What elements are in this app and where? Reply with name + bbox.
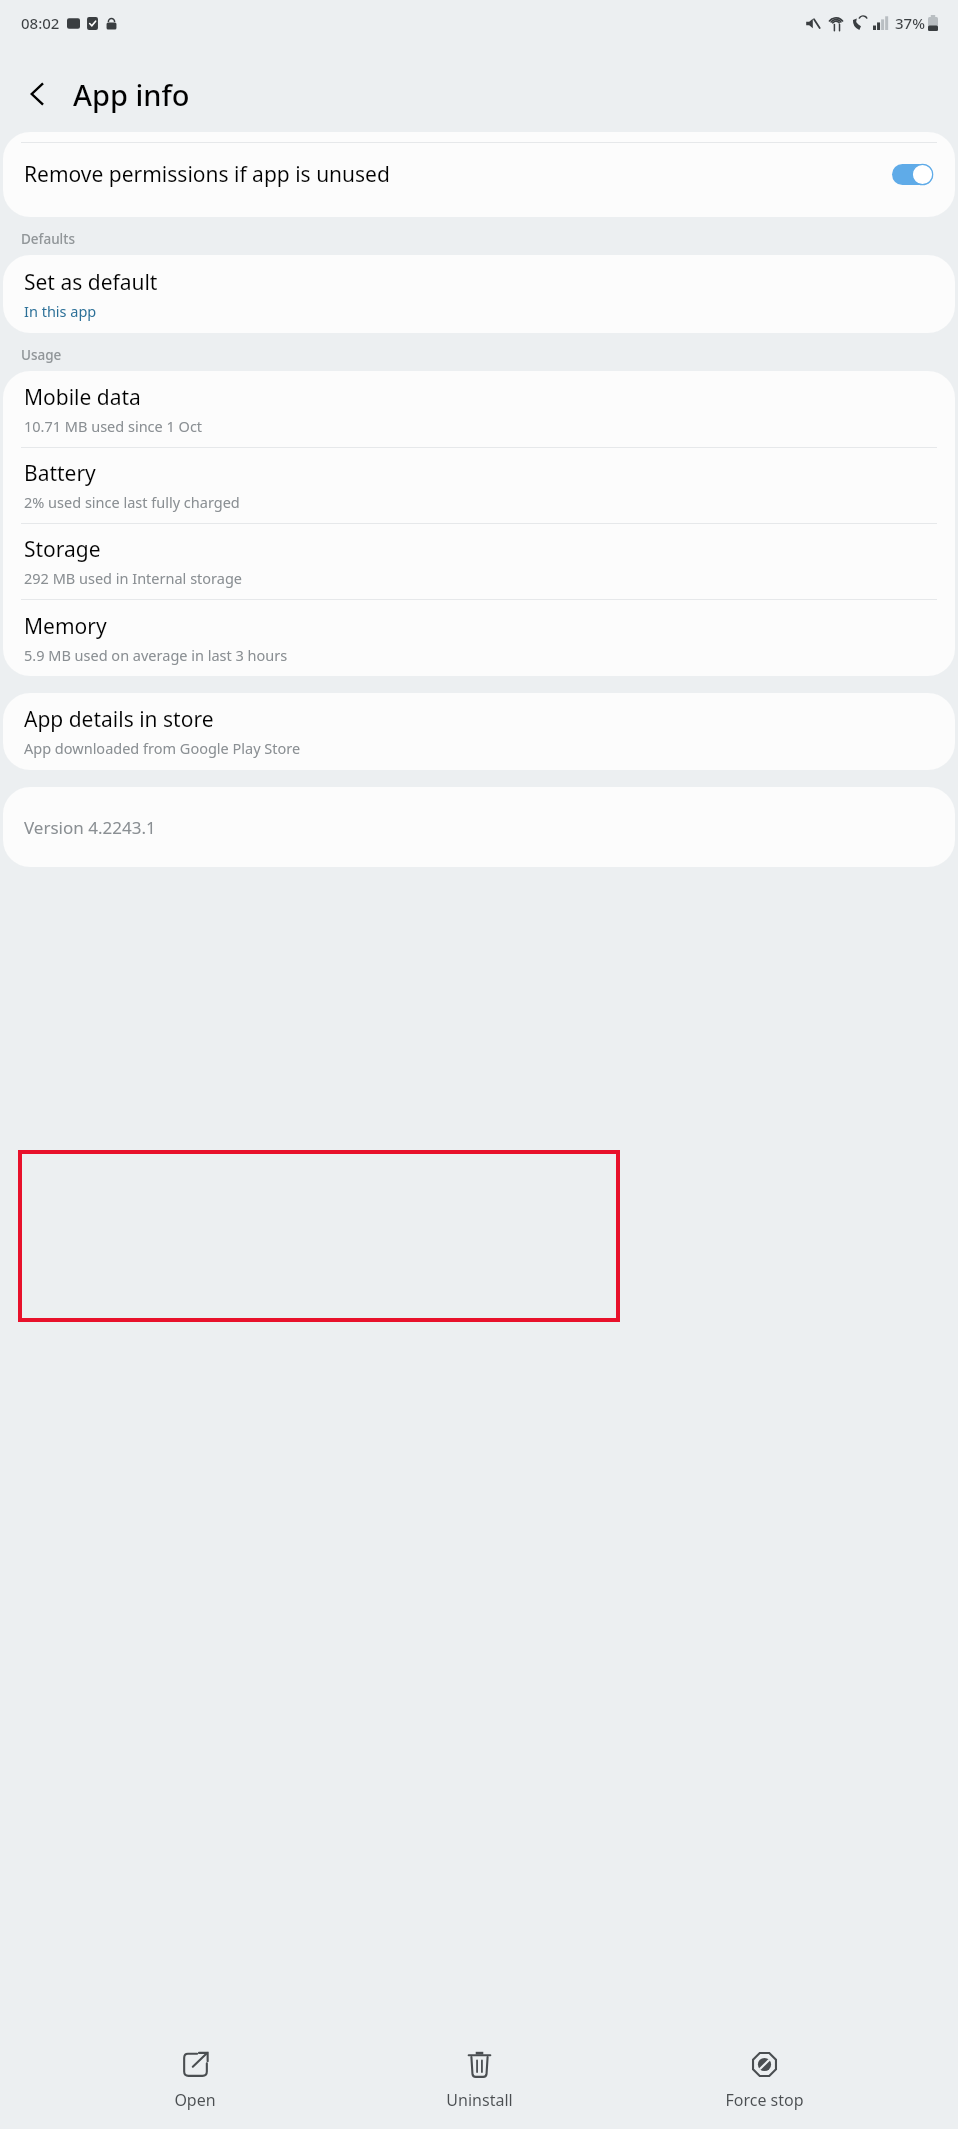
staticText: 10.71 MB used since 1 Oct [24,416,203,436]
button[interactable]: Open [105,2045,285,2117]
staticText: Usage [21,346,62,364]
staticText: 08:02 [21,13,60,33]
button[interactable]: Battery [3,448,955,523]
staticText: App downloaded from Google Play Store [24,738,301,758]
staticText: Battery [24,459,96,488]
staticText: App info [73,75,190,114]
button[interactable]: Set as default [3,255,955,333]
staticText: Force stop [725,2089,804,2111]
button[interactable]: App details in store [3,693,955,770]
staticText: 5.9 MB used on average in last 3 hours [24,645,288,665]
staticText: 2% used since last fully charged [24,492,240,512]
button[interactable]: Storage [3,524,955,599]
button[interactable]: Back [14,70,62,118]
staticText: App details in store [24,705,214,734]
staticText: Defaults [21,230,75,248]
button[interactable]: Force stop [674,2045,854,2117]
staticText: In this app [24,301,97,321]
button[interactable]: Memory [3,600,955,676]
button[interactable]: Version 4.2243.1 [3,787,955,867]
staticText: Version 4.2243.1 [24,816,156,839]
staticText: Mobile data [24,383,141,412]
staticText: Set as default [24,268,158,297]
staticText: 292 MB used in Internal storage [24,568,243,588]
button[interactable]: Mobile data [3,371,955,447]
staticText: 37% [895,13,925,33]
staticText: Open [174,2089,216,2111]
button[interactable]: Uninstall [389,2045,569,2117]
staticText: Memory [24,612,107,641]
staticText: Remove permissions if app is unused [24,160,882,189]
staticText: Storage [24,535,101,564]
button[interactable]: Remove permissions if app is unused [3,143,955,206]
staticText: Uninstall [446,2089,513,2111]
